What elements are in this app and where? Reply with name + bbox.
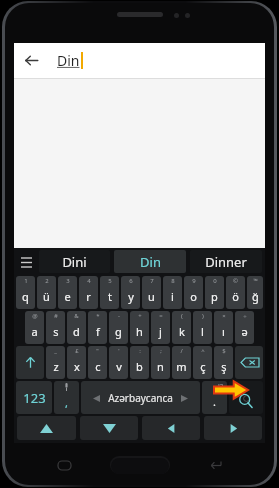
button[interactable]: Left	[142, 416, 200, 440]
staticText: 4	[87, 277, 91, 285]
staticText: n	[157, 359, 164, 374]
staticText: 2	[45, 277, 49, 285]
staticText: &	[74, 312, 79, 320]
staticText: c	[95, 359, 101, 374]
button[interactable]: 9	[184, 276, 203, 309]
button[interactable]: 7	[142, 276, 161, 309]
staticText: ş	[221, 359, 227, 374]
staticText: *	[96, 312, 100, 320]
button[interactable]: -	[109, 311, 128, 344]
staticText: u	[148, 289, 155, 304]
staticText: _	[54, 347, 57, 355]
staticText: ö	[232, 289, 239, 304]
staticText: i	[171, 289, 174, 304]
button[interactable]: Dini	[39, 250, 110, 273]
button[interactable]: @	[25, 311, 44, 344]
staticText: 3	[66, 277, 70, 285]
button[interactable]: £	[67, 346, 86, 379]
staticText: Din	[140, 253, 161, 271]
button[interactable]: 5	[100, 276, 119, 309]
staticText: :	[139, 347, 141, 355]
staticText: Dinner	[205, 253, 247, 271]
staticText: p	[211, 289, 218, 304]
staticText: m	[176, 359, 187, 374]
button[interactable]: 2	[37, 276, 56, 309]
button[interactable]: 6	[121, 276, 140, 309]
staticText: ç	[200, 359, 206, 374]
button[interactable]: Shift	[16, 346, 44, 379]
staticText: ;	[160, 347, 162, 355]
button[interactable]: Voice input	[54, 381, 79, 414]
button[interactable]: #	[46, 311, 65, 344]
button[interactable]: :	[130, 346, 149, 379]
staticText: z	[53, 359, 59, 374]
staticText: 123	[23, 389, 46, 407]
button[interactable]: *	[88, 311, 107, 344]
staticText: j	[159, 324, 162, 339]
button[interactable]: 4	[79, 276, 98, 309]
staticText: .	[213, 394, 216, 409]
staticText: e	[64, 289, 71, 304]
staticText: 1	[24, 277, 28, 285]
button[interactable]: Dinner	[190, 250, 262, 273]
staticText: a	[31, 324, 38, 339]
staticText: )	[202, 312, 204, 320]
staticText: y	[128, 289, 134, 304]
button[interactable]: ^	[193, 346, 212, 379]
button[interactable]: Down	[80, 416, 138, 440]
button[interactable]: (	[172, 311, 191, 344]
staticText: ə	[241, 324, 248, 339]
button[interactable]: +	[130, 311, 149, 344]
staticText: v	[116, 359, 122, 374]
button[interactable]: _	[46, 346, 65, 379]
staticText: 5	[108, 277, 112, 285]
staticText: h	[136, 324, 143, 339]
staticText: £	[75, 347, 79, 355]
staticText: Din	[57, 51, 80, 70]
staticText: ^	[201, 347, 205, 355]
button[interactable]: Azərbaycanca	[81, 381, 200, 414]
button[interactable]: 1	[16, 276, 35, 309]
staticText: ğ	[252, 289, 259, 304]
staticText: d	[73, 324, 80, 339]
staticText: 0	[213, 277, 217, 285]
staticText: ÷	[243, 312, 247, 320]
staticText: x	[74, 359, 80, 374]
button[interactable]: ©	[226, 276, 245, 309]
staticText: t	[108, 289, 112, 304]
button[interactable]: Din	[114, 250, 186, 273]
button[interactable]: ×	[214, 311, 233, 344]
button[interactable]: 0	[205, 276, 224, 309]
staticText: 6	[129, 277, 133, 285]
button[interactable]: ;	[151, 346, 170, 379]
button[interactable]: Up	[17, 416, 76, 440]
staticText: ı	[222, 324, 225, 339]
button[interactable]: 3	[58, 276, 77, 309]
button[interactable]: !?	[202, 381, 227, 414]
staticText: /	[180, 347, 183, 355]
button[interactable]: Back	[14, 43, 49, 78]
button[interactable]: ™	[247, 276, 263, 309]
button[interactable]: &	[67, 311, 86, 344]
staticText: l	[201, 324, 204, 339]
button[interactable]: '	[109, 346, 128, 379]
button[interactable]: )	[193, 311, 212, 344]
button[interactable]: 8	[163, 276, 182, 309]
staticText: s	[53, 324, 59, 339]
button[interactable]: Search	[229, 381, 263, 414]
button[interactable]: "	[88, 346, 107, 379]
staticText: f	[96, 324, 100, 339]
button[interactable]: =	[151, 311, 170, 344]
button[interactable]: Backspace	[235, 346, 263, 379]
button[interactable]: $	[214, 346, 233, 379]
staticText: k	[179, 324, 185, 339]
staticText: "	[96, 347, 99, 355]
button[interactable]: Keyboard menu	[15, 250, 37, 273]
staticText: 8	[171, 277, 175, 285]
button[interactable]: Right	[204, 416, 262, 440]
button[interactable]: 123	[16, 381, 52, 414]
staticText: ™	[253, 277, 258, 285]
button[interactable]: /	[172, 346, 191, 379]
button[interactable]: ÷	[235, 311, 254, 344]
staticText: !?	[218, 382, 223, 392]
